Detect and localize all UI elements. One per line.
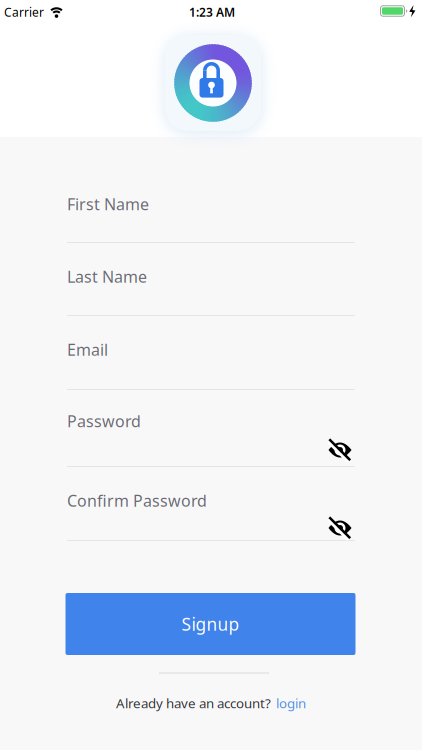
staticText: Email [67, 339, 108, 360]
staticText: Signup [181, 612, 239, 635]
button[interactable]: Password [67, 401, 355, 467]
button[interactable]: Show password [0, 0, 422, 750]
staticText: Last Name [67, 266, 147, 287]
button[interactable]: First Name [67, 184, 355, 243]
staticText: Carrier [4, 4, 44, 20]
button[interactable]: Email [67, 329, 355, 390]
staticText: First Name [67, 193, 149, 215]
button[interactable]: Last Name [67, 256, 355, 316]
button[interactable]: login [276, 694, 306, 712]
staticText: 1:23 AM [189, 4, 235, 20]
staticText: Confirm Password [67, 490, 207, 511]
button[interactable]: Signup [65, 593, 355, 655]
staticText: login [276, 694, 306, 712]
staticText: Password [67, 410, 141, 432]
button[interactable]: Confirm Password [67, 480, 355, 541]
button[interactable]: Show password [0, 0, 422, 750]
staticText: Already have an account? [116, 694, 271, 712]
